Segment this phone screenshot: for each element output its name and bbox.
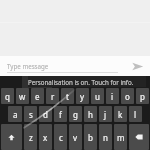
staticText: d xyxy=(43,109,48,120)
button[interactable]: Type message xyxy=(7,59,118,73)
button[interactable]: m xyxy=(114,124,127,150)
button[interactable]: Shift xyxy=(1,124,22,150)
staticText: b xyxy=(88,132,93,143)
staticText: m xyxy=(117,132,125,143)
staticText: q xyxy=(5,91,10,102)
staticText: v xyxy=(73,132,78,143)
staticText: o xyxy=(125,91,130,102)
button[interactable]: j xyxy=(99,106,112,122)
button[interactable]: b xyxy=(84,124,97,150)
staticText: i xyxy=(111,91,114,102)
button[interactable]: p xyxy=(136,88,149,104)
staticText: Type message xyxy=(7,62,49,70)
button[interactable]: w xyxy=(16,88,29,104)
button[interactable]: e xyxy=(31,88,44,104)
button[interactable]: h xyxy=(84,106,97,122)
button[interactable]: o xyxy=(121,88,134,104)
button[interactable]: v xyxy=(69,124,82,150)
button[interactable]: i xyxy=(106,88,119,104)
staticText: n xyxy=(103,132,108,143)
button[interactable]: Send xyxy=(124,56,150,76)
button[interactable]: z xyxy=(24,124,37,150)
button[interactable]: r xyxy=(46,88,59,104)
staticText: w xyxy=(19,91,26,102)
button[interactable]: Backspace xyxy=(129,124,149,150)
button[interactable]: q xyxy=(1,88,14,104)
button[interactable]: Personalisation is on. Touch for info. xyxy=(28,76,150,87)
staticText: c xyxy=(59,132,63,143)
staticText: z xyxy=(29,132,33,143)
staticText: g xyxy=(73,109,78,120)
staticText: p xyxy=(140,91,145,102)
button[interactable]: t xyxy=(61,88,74,104)
staticText: r xyxy=(51,91,55,102)
staticText: y xyxy=(80,91,85,102)
button[interactable]: l xyxy=(129,106,142,122)
button[interactable]: d xyxy=(39,106,52,122)
button[interactable]: c xyxy=(54,124,67,150)
staticText: this xyxy=(31,77,44,87)
button[interactable]: n xyxy=(99,124,112,150)
button[interactable]: g xyxy=(69,106,82,122)
button[interactable]: x xyxy=(39,124,52,150)
staticText: x xyxy=(43,132,48,143)
staticText: k xyxy=(118,109,123,120)
staticText: f xyxy=(59,109,62,120)
button[interactable]: this xyxy=(22,76,52,88)
staticText: s xyxy=(29,109,33,120)
button[interactable]: f xyxy=(54,106,67,122)
staticText: j xyxy=(104,109,107,120)
staticText: Personalisation is on. Touch for info. xyxy=(28,78,134,86)
button[interactable]: s xyxy=(24,106,37,122)
staticText: l xyxy=(134,109,137,120)
button[interactable]: a xyxy=(8,106,22,122)
button[interactable]: y xyxy=(76,88,89,104)
button[interactable]: u xyxy=(91,88,104,104)
staticText: e xyxy=(35,91,40,102)
staticText: h xyxy=(88,109,93,120)
staticText: t xyxy=(66,91,69,102)
button[interactable]: k xyxy=(114,106,127,122)
staticText: u xyxy=(95,91,100,102)
staticText: a xyxy=(13,109,18,120)
